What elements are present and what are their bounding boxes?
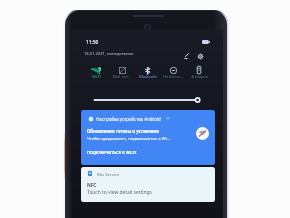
staticText: Обновления готовы к установке <box>87 128 159 134</box>
button[interactable]: Mis Service <box>81 167 215 202</box>
button[interactable]: Не беспо... <box>160 62 186 81</box>
staticText: Настройка устройства Android <box>96 116 161 122</box>
button[interactable]: Настройка устройства Android <box>81 110 215 165</box>
staticText: Моб. инт... <box>112 74 132 79</box>
staticText: Bluetooth <box>139 74 157 79</box>
button[interactable]: Settings <box>196 52 205 61</box>
staticText: Не беспо... <box>163 74 183 79</box>
staticText: Touch to view detail settings <box>87 189 152 196</box>
staticText: Wi-Fi <box>92 74 101 79</box>
button[interactable]: Wi-Fi <box>83 62 109 81</box>
button[interactable]: Фонарик <box>186 62 212 81</box>
button[interactable]: Моб. инт... <box>109 62 135 81</box>
staticText: 18.01.2021, понедельник <box>84 51 134 57</box>
staticText: 11:50 <box>86 39 99 46</box>
button[interactable]: ПОДКЛЮЧИТЬСЯ К WI-FI <box>85 149 137 158</box>
button[interactable]: Edit quick settings <box>182 51 191 60</box>
staticText: ПОДКЛЮЧИТЬСЯ К WI-FI <box>87 150 137 155</box>
staticText: Чтобы продолжить, подключитесь к Wi… <box>87 136 171 142</box>
staticText: Фонарик <box>191 74 208 79</box>
button[interactable]: Bluetooth <box>135 62 161 81</box>
staticText: Mis Service <box>97 171 120 177</box>
staticText: NFC <box>87 182 97 188</box>
